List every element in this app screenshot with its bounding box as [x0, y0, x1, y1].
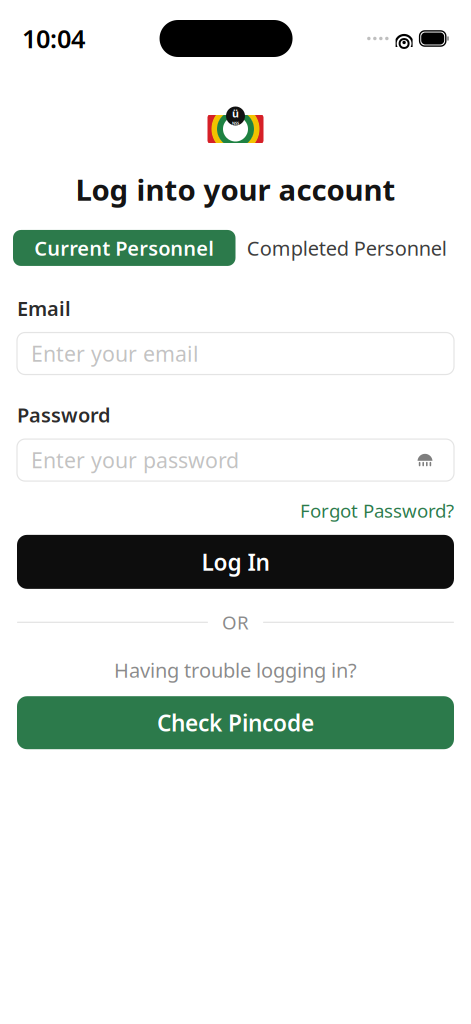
button[interactable]: Show password	[410, 445, 440, 475]
staticText: Email	[17, 295, 71, 322]
button[interactable]: Log In	[17, 535, 454, 589]
staticText: Log into your account	[75, 170, 395, 209]
staticText: Current Personnel	[34, 235, 214, 261]
staticText: ü	[232, 106, 239, 120]
button[interactable]: Check Pincode	[17, 696, 454, 749]
staticText: NSS	[232, 120, 239, 126]
staticText: 10:04	[22, 22, 85, 55]
staticText: Enter your email	[31, 339, 199, 368]
staticText: Forgot Password?	[300, 498, 454, 523]
staticText: Completed Personnel	[247, 235, 447, 261]
staticText: Check Pincode	[157, 708, 314, 738]
button[interactable]: Current Personnel	[13, 230, 235, 266]
staticText: Having trouble logging in?	[114, 657, 357, 683]
button[interactable]: Completed Personnel	[235, 230, 458, 266]
staticText: Password	[17, 401, 111, 428]
staticText: Enter your password	[31, 446, 239, 474]
staticText: Log In	[201, 547, 269, 577]
button[interactable]: Forgot Password?	[300, 498, 454, 523]
staticText: OR	[222, 610, 249, 635]
